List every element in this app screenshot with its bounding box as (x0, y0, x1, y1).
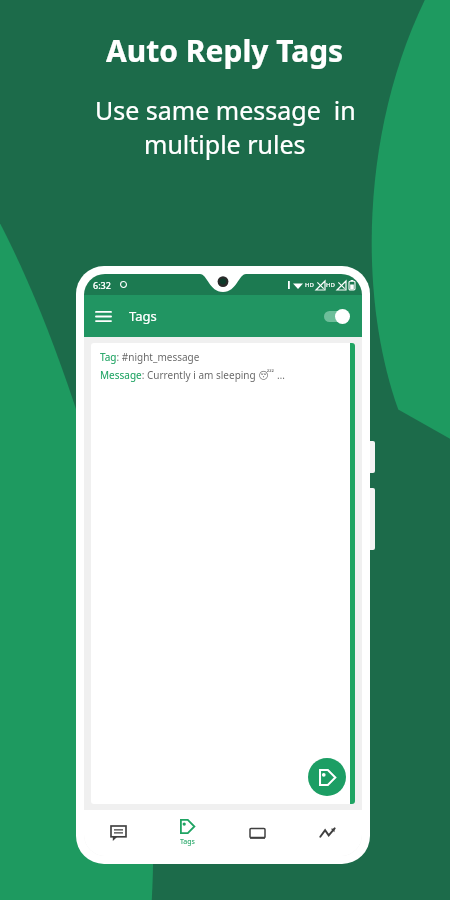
button[interactable]: Enable auto reply (321, 308, 351, 324)
staticText: Message: Currently i am sleeping 😴 … (100, 368, 285, 382)
button[interactable]: Tab (292, 810, 362, 856)
staticText: Tags (180, 837, 195, 847)
button[interactable]: Tags (153, 810, 222, 856)
button[interactable]: Add tag (308, 758, 346, 796)
button[interactable]: Open navigation menu (84, 297, 122, 335)
staticText: Auto Reply Tags (106, 30, 344, 71)
staticText: HD (326, 281, 335, 289)
staticText: Tags (129, 307, 157, 325)
staticText: Tag: #night_message (100, 350, 200, 364)
button[interactable]: Tab (222, 810, 292, 856)
staticText: multiple rules (144, 127, 306, 161)
button[interactable]: Tag: #night_message (91, 343, 355, 804)
button[interactable]: Tab (84, 810, 153, 856)
staticText: Use same message in (95, 93, 356, 127)
staticText: HD (305, 281, 314, 289)
staticText: 6:32 (93, 279, 111, 291)
